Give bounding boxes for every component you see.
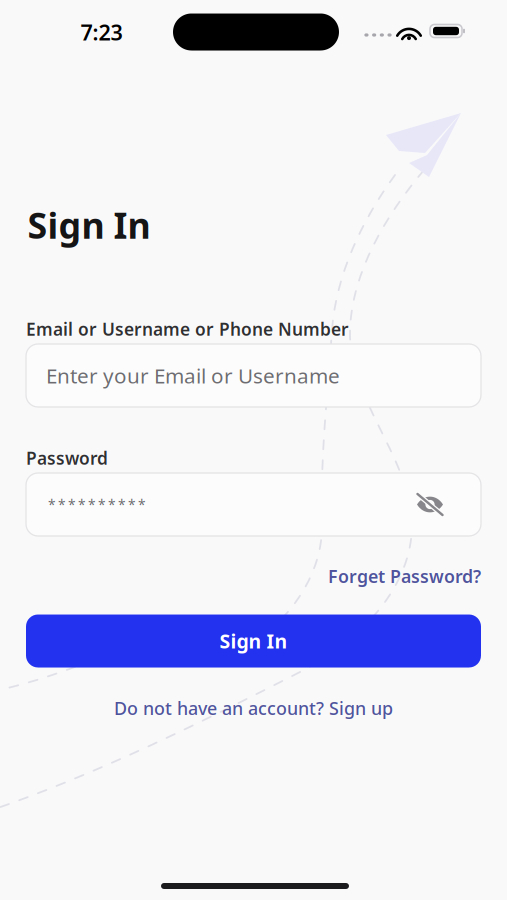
staticText: Sign In (219, 628, 287, 654)
staticText: Enter your Email or Username (46, 361, 340, 389)
staticText: * * * * * * * * * * (46, 495, 146, 514)
button[interactable]: Sign In (26, 614, 481, 667)
staticText: 7:23 (80, 17, 122, 47)
button[interactable]: Do not have an account? Sign up (73, 694, 433, 722)
button[interactable]: Show password (408, 482, 452, 526)
staticText: Do not have an account? Sign up (114, 696, 393, 720)
staticText: Email or Username or Phone Number (26, 317, 349, 341)
staticText: Password (26, 446, 108, 470)
staticText: Sign In (27, 201, 150, 249)
staticText: Forget Password? (328, 564, 481, 588)
button[interactable]: Forget Password? (281, 564, 481, 588)
